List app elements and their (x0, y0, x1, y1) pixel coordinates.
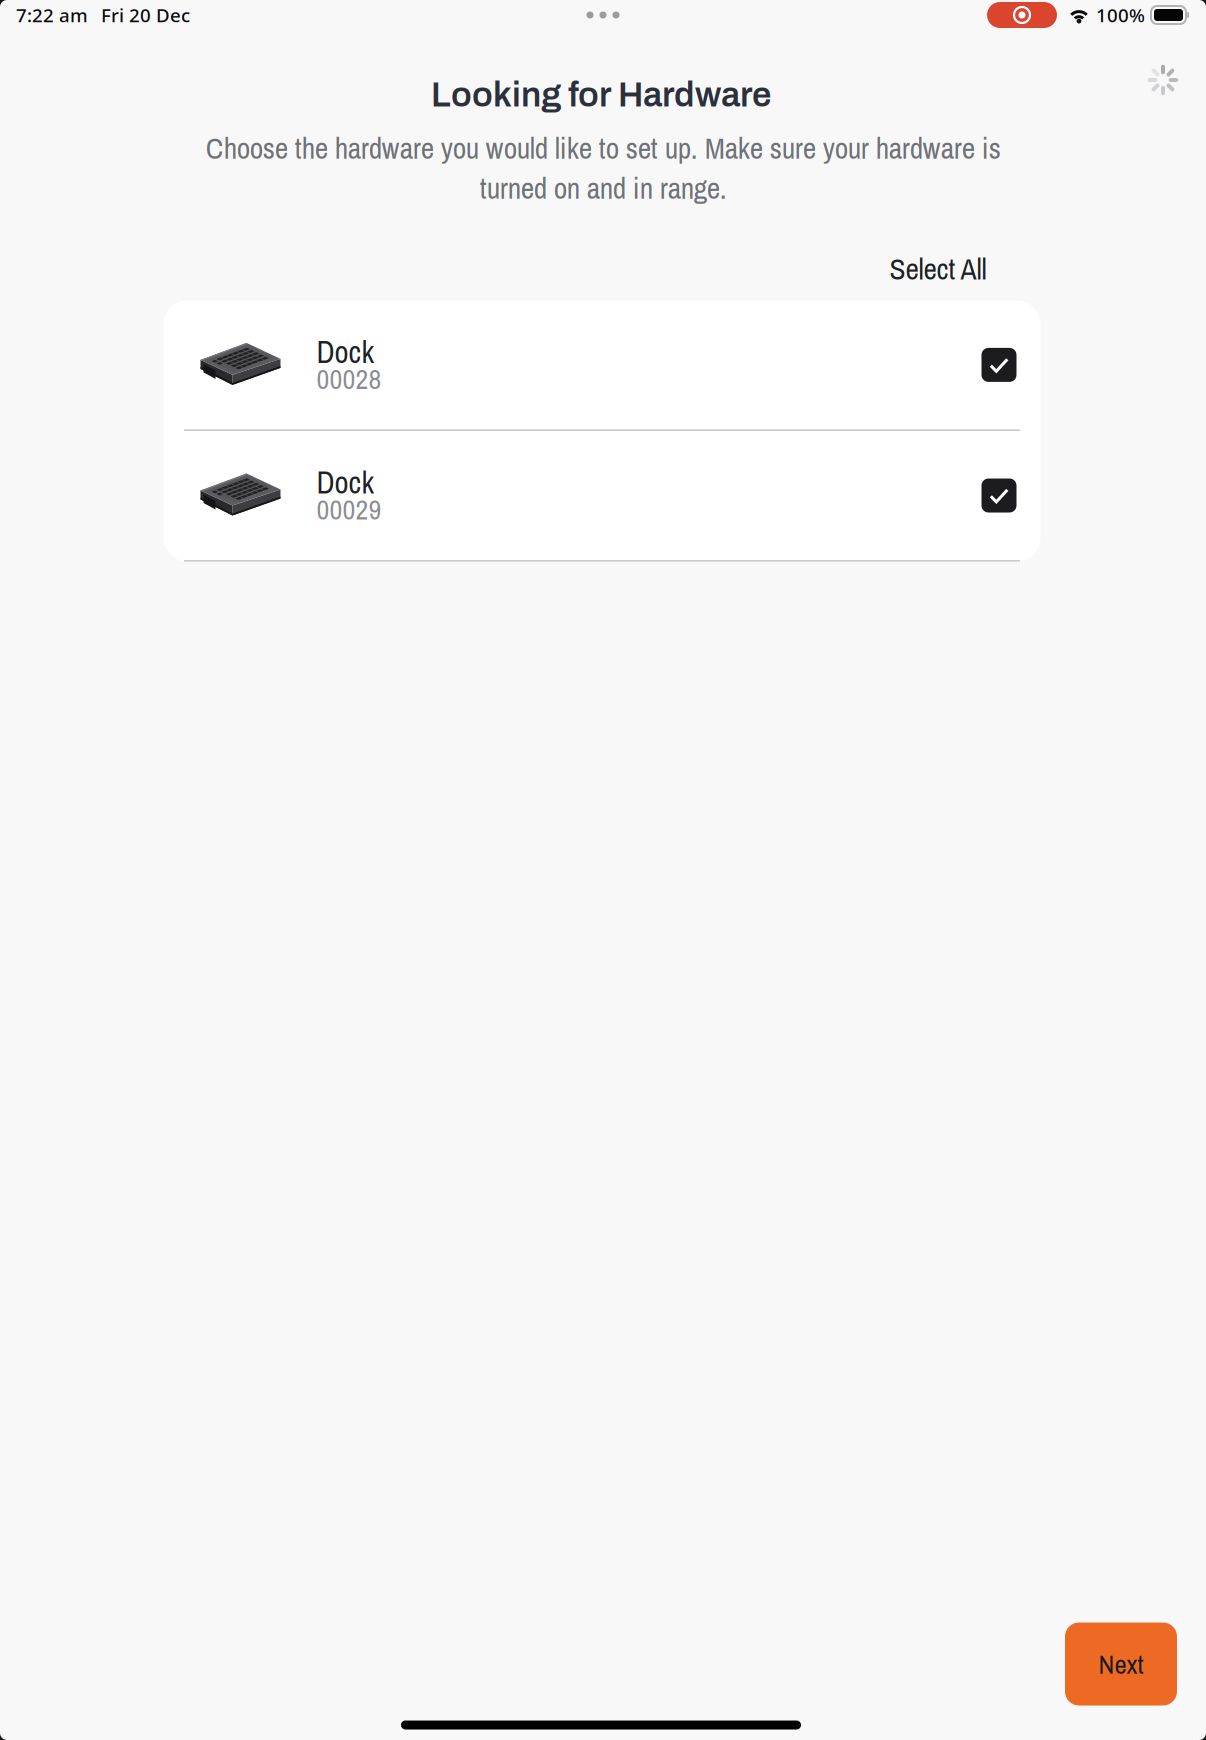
staticText: Next (1098, 1646, 1143, 1682)
button[interactable]: Dock (163, 300, 1040, 429)
staticText: Dock (316, 331, 374, 372)
button[interactable]: Select All (879, 241, 996, 297)
staticText: 00028 (316, 360, 381, 398)
button[interactable]: Next (1065, 1622, 1177, 1705)
staticText: 00029 (316, 491, 381, 528)
staticText: Choose the hardware you would like to se… (205, 128, 1000, 208)
staticText: 100% (1096, 3, 1145, 27)
staticText: Fri 20 Dec (101, 3, 190, 27)
staticText: Dock (316, 462, 374, 503)
staticText: 7:22 am (16, 3, 88, 27)
button[interactable]: Dock (163, 431, 1040, 560)
staticText: Looking for Hardware (431, 76, 771, 114)
staticText: Select All (889, 249, 986, 289)
